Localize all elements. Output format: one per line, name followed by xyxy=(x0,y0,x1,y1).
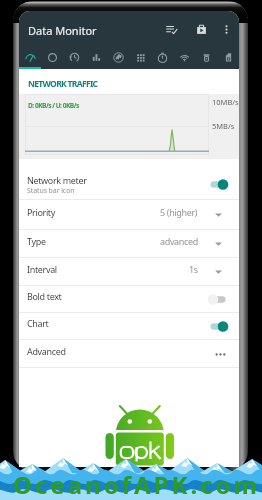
button[interactable]: Type xyxy=(19,230,239,257)
button[interactable]: Network meter xyxy=(19,159,239,199)
button[interactable]: Wi-Fi xyxy=(173,46,195,69)
staticText: Bold text xyxy=(27,290,62,302)
staticText: Chart xyxy=(27,317,49,329)
button[interactable]: Priority xyxy=(19,200,239,229)
staticText: Advanced xyxy=(27,345,66,357)
staticText: 1s xyxy=(189,263,198,275)
button[interactable]: More options xyxy=(216,19,236,39)
button[interactable]: SIM xyxy=(217,46,239,69)
staticText: advanced xyxy=(160,235,198,247)
button[interactable]: Network xyxy=(107,46,129,69)
staticText: NETWORK TRAFFIC xyxy=(28,78,98,90)
button[interactable]: Playlist add check xyxy=(161,19,181,39)
staticText: Status bar icon xyxy=(27,186,75,196)
staticText: 5MB/s xyxy=(212,121,235,131)
button[interactable]: Off xyxy=(207,293,229,306)
button[interactable]: History xyxy=(63,46,85,69)
button[interactable]: Device xyxy=(195,46,217,69)
button[interactable]: Interval xyxy=(19,258,239,285)
staticText: Data Monitor xyxy=(28,23,97,38)
staticText: OceanofAPK.com xyxy=(13,468,260,500)
button[interactable]: Advanced xyxy=(19,340,239,367)
staticText: D: 0KB/s / U: 0KB/s xyxy=(28,101,79,110)
staticText: 10MB/s xyxy=(212,97,239,107)
button[interactable]: Store xyxy=(191,19,211,39)
button[interactable]: Bold text xyxy=(19,286,239,312)
button[interactable]: Chart xyxy=(19,313,239,339)
staticText: 5 (higher) xyxy=(160,206,198,218)
staticText: Priority xyxy=(27,206,56,218)
button[interactable]: Timer xyxy=(151,46,173,69)
button[interactable]: Apps xyxy=(129,46,151,69)
button[interactable]: Usage xyxy=(41,46,63,69)
button[interactable]: More xyxy=(213,347,227,361)
button[interactable]: On xyxy=(207,320,229,333)
staticText: Network meter xyxy=(27,174,87,186)
button[interactable]: Speed xyxy=(19,46,41,69)
button[interactable]: Statistics xyxy=(85,46,107,69)
staticText: Type xyxy=(27,235,46,247)
button[interactable]: On xyxy=(207,178,229,191)
staticText: Interval xyxy=(27,263,57,275)
